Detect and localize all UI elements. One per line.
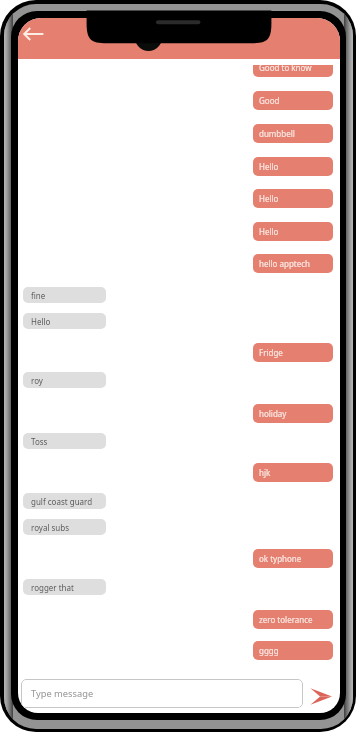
button[interactable]: Type message (21, 679, 303, 708)
button[interactable]: dumbbell (253, 124, 333, 143)
staticText: dumbbell (259, 128, 295, 139)
button[interactable]: Hello (253, 157, 333, 176)
staticText: gggg (259, 645, 279, 656)
button[interactable]: royal subs (23, 519, 106, 535)
staticText: Hello (31, 316, 51, 327)
button[interactable]: Good to know (253, 65, 333, 77)
staticText: Toss (31, 436, 48, 447)
button[interactable]: hello apptech (253, 254, 333, 273)
staticText: Hello (259, 226, 279, 237)
staticText: Hello (259, 161, 279, 172)
button[interactable]: ok typhone (253, 549, 333, 568)
button[interactable]: rogger that (23, 579, 106, 595)
staticText: Good (259, 95, 280, 106)
staticText: Fridge (259, 347, 283, 358)
staticText: fine (31, 290, 46, 301)
button[interactable]: Back (21, 20, 49, 48)
button[interactable]: holiday (253, 404, 333, 423)
staticText: holiday (259, 408, 287, 419)
button[interactable]: Good (253, 91, 333, 110)
button[interactable]: Send (306, 681, 336, 711)
staticText: gulf coast guard (31, 496, 93, 507)
button[interactable]: Hello (253, 189, 333, 208)
button[interactable]: Toss (23, 433, 106, 449)
staticText: ok typhone (259, 553, 302, 564)
staticText: royal subs (31, 522, 70, 533)
staticText: rogger that (31, 582, 74, 593)
button[interactable]: Fridge (253, 343, 333, 362)
staticText: Hello (259, 193, 279, 204)
button[interactable]: gggg (253, 641, 333, 660)
staticText: Type message (31, 687, 94, 700)
button[interactable]: roy (23, 372, 106, 388)
button[interactable]: zero tolerance (253, 610, 333, 629)
button[interactable]: gulf coast guard (23, 493, 106, 509)
button[interactable]: fine (23, 287, 106, 303)
staticText: Good to know (259, 65, 312, 73)
button[interactable]: Hello (253, 222, 333, 241)
staticText: hjk (259, 467, 271, 478)
staticText: roy (31, 375, 43, 386)
button[interactable]: Hello (23, 313, 106, 329)
button[interactable]: hjk (253, 463, 333, 482)
staticText: hello apptech (259, 258, 311, 269)
staticText: zero tolerance (259, 614, 313, 625)
